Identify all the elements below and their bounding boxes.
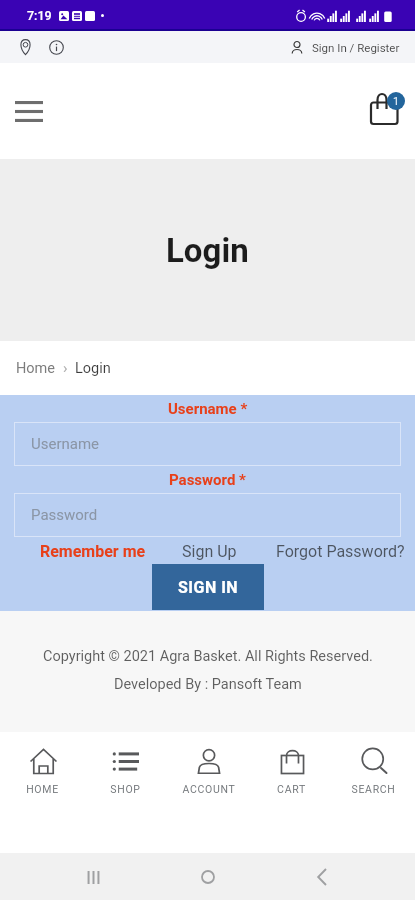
staticText: SIGN IN — [178, 578, 239, 597]
button[interactable]: Home — [186, 855, 230, 899]
button[interactable]: Username — [14, 422, 401, 466]
button[interactable]: SHOP — [88, 748, 162, 810]
button[interactable]: SIGN IN — [152, 564, 264, 610]
button[interactable]: Home — [16, 360, 56, 377]
staticText: Password — [31, 506, 98, 524]
button[interactable]: CART — [254, 748, 328, 810]
staticText: SEARCH — [351, 783, 396, 795]
staticText: Login — [166, 231, 249, 270]
staticText: Password * — [169, 471, 246, 489]
staticText: Developed By : Pansoft Team — [114, 676, 302, 693]
button[interactable]: Remember me — [40, 540, 146, 563]
button[interactable]: HOME — [5, 748, 79, 810]
button[interactable]: Recent apps — [71, 855, 115, 899]
staticText: › — [63, 359, 68, 377]
staticText: Forgot Password? — [276, 542, 405, 561]
staticText: Copyright © 2021 Agra Basket. All Rights… — [43, 648, 373, 665]
staticText: Remember me — [40, 542, 146, 561]
staticText: 1 — [393, 95, 400, 108]
staticText: 7:19 — [27, 8, 52, 23]
staticText: CART — [277, 783, 306, 795]
button[interactable]: Menu — [7, 91, 51, 131]
button[interactable]: Cart — [362, 88, 408, 134]
button[interactable]: SEARCH — [336, 748, 410, 810]
button[interactable]: Sign Up — [182, 540, 237, 563]
staticText: Sign Up — [182, 542, 237, 561]
staticText: HOME — [26, 783, 59, 795]
staticText: Sign In / Register — [312, 41, 400, 54]
button[interactable]: Sign In / Register — [291, 37, 400, 58]
button[interactable]: Back — [300, 855, 344, 899]
staticText: ACCOUNT — [182, 783, 236, 795]
button[interactable]: Forgot Password? — [276, 540, 405, 563]
staticText: Username — [31, 435, 100, 453]
staticText: Username * — [168, 400, 248, 418]
staticText: SHOP — [110, 783, 141, 795]
button[interactable]: ACCOUNT — [172, 748, 246, 810]
button[interactable]: Information — [43, 34, 69, 60]
button[interactable]: Store locator — [12, 34, 38, 60]
button[interactable]: Password — [14, 493, 401, 537]
staticText: Login — [75, 360, 111, 377]
